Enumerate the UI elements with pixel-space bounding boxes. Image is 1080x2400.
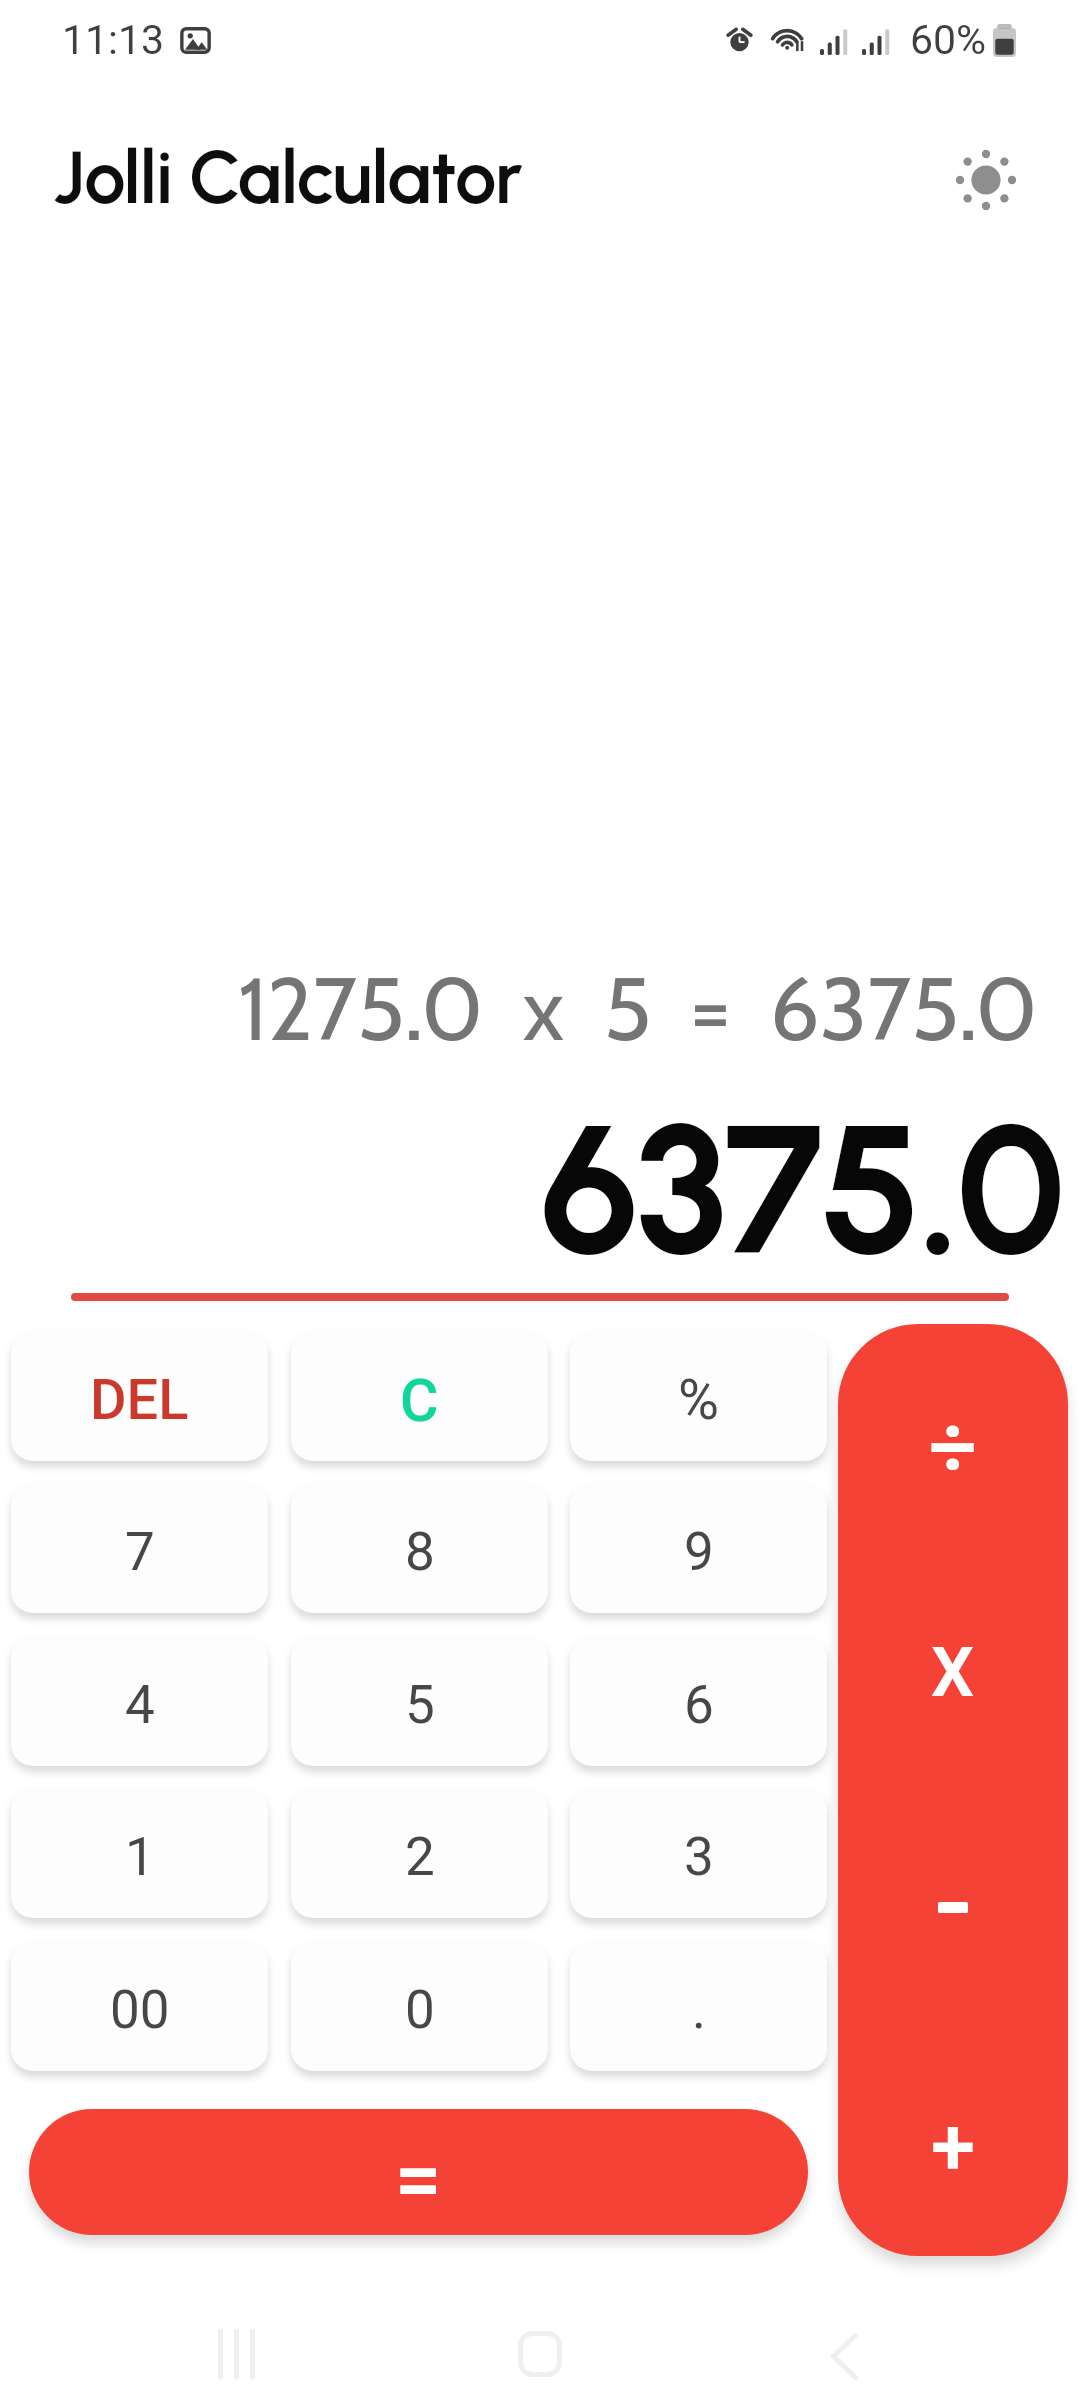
button[interactable]: 5	[291, 1636, 548, 1766]
staticText: C	[400, 1366, 439, 1435]
button[interactable]: Home	[480, 2294, 600, 2400]
staticText: 4	[125, 1674, 155, 1736]
button[interactable]: 0	[291, 1941, 548, 2071]
staticText: 3	[684, 1826, 714, 1888]
button[interactable]: =	[29, 2109, 808, 2235]
button[interactable]: 2	[291, 1788, 548, 1918]
button[interactable]: 9	[570, 1483, 827, 1613]
staticText: %	[678, 1367, 720, 1433]
button[interactable]: 4	[11, 1636, 268, 1766]
button[interactable]: 00	[11, 1941, 268, 2071]
staticText: 9	[684, 1521, 714, 1583]
button[interactable]: Subtract	[838, 1790, 1068, 2023]
staticText: Jolli Calculator	[53, 133, 522, 222]
staticText: +	[931, 2100, 975, 2194]
staticText: 2	[405, 1826, 435, 1888]
staticText: 1275.0 x 5 = 6375.0	[238, 955, 1038, 1062]
staticText: 00	[110, 1979, 170, 2041]
staticText: 0	[405, 1979, 435, 2041]
button[interactable]: Recent apps	[178, 2294, 298, 2400]
button[interactable]: Divide	[838, 1324, 1068, 1557]
button[interactable]: C	[291, 1331, 548, 1461]
button[interactable]: .	[570, 1941, 827, 2071]
button[interactable]: 7	[11, 1483, 268, 1613]
button[interactable]: 1	[11, 1788, 268, 1918]
staticText: 5	[405, 1674, 435, 1736]
staticText: DEL	[90, 1367, 189, 1433]
button[interactable]: DEL	[11, 1331, 268, 1461]
staticText: .	[692, 1979, 706, 2041]
staticText: 60%	[910, 16, 987, 64]
staticText: 7	[125, 1521, 155, 1583]
button[interactable]: 6	[570, 1636, 827, 1766]
button[interactable]: 3	[570, 1788, 827, 1918]
staticText: 6	[684, 1674, 714, 1736]
staticText: =	[395, 2132, 442, 2228]
button[interactable]: Add	[838, 2023, 1068, 2256]
staticText: 1	[125, 1826, 155, 1888]
staticText: X	[931, 1633, 975, 1713]
staticText: 11:13	[62, 16, 165, 64]
button[interactable]: 8	[291, 1483, 548, 1613]
staticText: 6375.0	[540, 1082, 1062, 1298]
button[interactable]: %	[570, 1331, 827, 1461]
staticText: ÷	[929, 1398, 977, 1496]
button[interactable]: Toggle light and dark theme	[944, 138, 1028, 222]
staticText: 8	[405, 1521, 435, 1583]
button[interactable]: Multiply	[838, 1557, 1068, 1790]
